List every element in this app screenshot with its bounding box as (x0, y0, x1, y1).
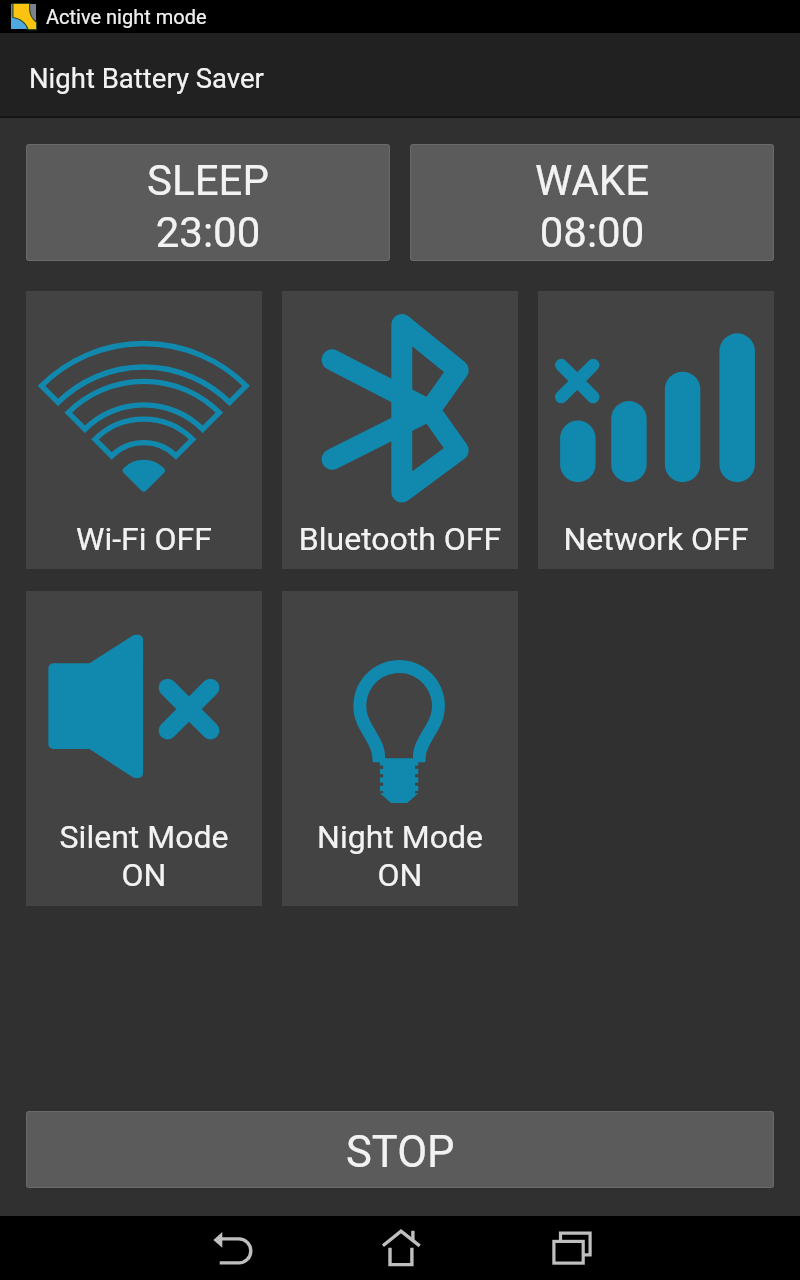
button[interactable]: Silent Mode ON (26, 591, 262, 906)
staticText: Silent Mode ON (26, 818, 262, 894)
button[interactable]: WAKE 08:00 (410, 144, 774, 261)
button[interactable]: Home (316, 1216, 486, 1280)
button[interactable]: SLEEP 23:00 (26, 144, 390, 261)
staticText: Night Mode ON (282, 818, 518, 894)
button[interactable]: STOP (26, 1111, 774, 1188)
button[interactable]: Wi-Fi OFF (26, 291, 262, 569)
button[interactable]: Bluetooth OFF (282, 291, 518, 569)
staticText: SLEEP 23:00 (26, 156, 390, 257)
button[interactable]: Night Mode ON (282, 591, 518, 906)
staticText: Network OFF (538, 520, 774, 558)
staticText: Night Battery Saver (29, 62, 264, 94)
button[interactable]: Recents (486, 1216, 656, 1280)
button[interactable]: Network OFF (538, 291, 774, 569)
staticText: Bluetooth OFF (282, 520, 518, 558)
staticText: Wi-Fi OFF (26, 520, 262, 558)
button[interactable]: Back (146, 1216, 316, 1280)
staticText: STOP (346, 1127, 455, 1178)
staticText: WAKE 08:00 (410, 156, 774, 257)
staticText: Active night mode (46, 5, 207, 28)
